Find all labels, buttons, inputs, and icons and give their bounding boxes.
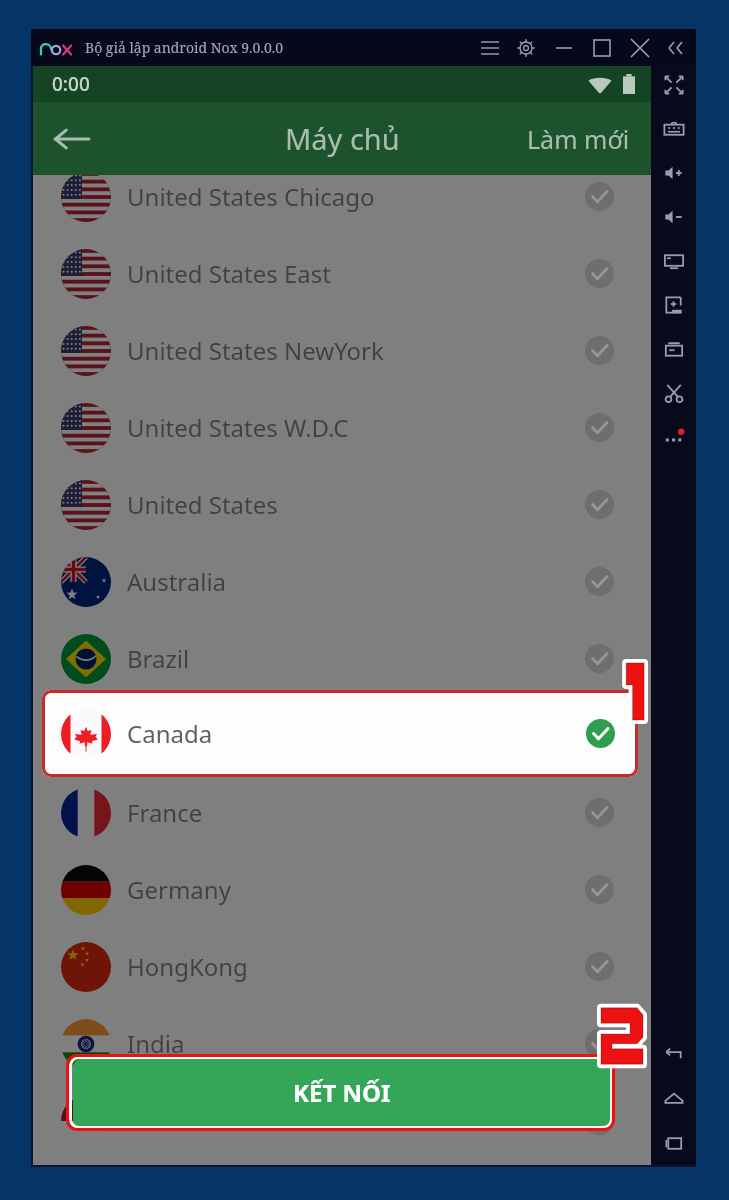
staticText: United States Chicago: [127, 180, 375, 213]
button[interactable]: United States: [33, 466, 651, 543]
button[interactable]: Collapse sidebar: [662, 34, 690, 62]
staticText: United States: [127, 488, 278, 521]
button[interactable]: United States W.D.C: [33, 389, 651, 466]
staticText: HongKong: [127, 950, 248, 983]
button[interactable]: Australia: [33, 543, 651, 620]
staticText: 0:00: [52, 71, 90, 97]
button[interactable]: France: [33, 774, 651, 851]
button[interactable]: Back: [658, 1037, 690, 1069]
button[interactable]: Làm mới: [527, 102, 651, 175]
button[interactable]: Minimize: [550, 34, 578, 62]
button[interactable]: Shared folder: [658, 333, 690, 365]
button[interactable]: Germany: [33, 851, 651, 928]
button[interactable]: United States East: [33, 235, 651, 312]
button[interactable]: Home: [658, 1082, 690, 1114]
button[interactable]: Back: [33, 102, 111, 175]
button[interactable]: Brazil: [33, 620, 651, 697]
staticText: Australia: [127, 565, 227, 598]
button[interactable]: Indonesia: [33, 1082, 651, 1159]
button[interactable]: Volume down: [658, 201, 690, 233]
staticText: United States W.D.C: [127, 411, 349, 444]
staticText: Máy chủ: [285, 119, 400, 158]
button[interactable]: United States NewYork: [33, 312, 651, 389]
staticText: Indonesia: [127, 1104, 239, 1137]
staticText: Bộ giả lập android Nox 9.0.0.0: [85, 38, 284, 57]
staticText: Brazil: [127, 642, 190, 675]
button[interactable]: Menu: [476, 34, 504, 62]
button[interactable]: Canada: [42, 690, 638, 777]
staticText: KẾT NỐI: [293, 1076, 391, 1109]
button[interactable]: Volume up: [658, 157, 690, 189]
staticText: France: [127, 796, 203, 829]
button[interactable]: Screenshot: [658, 245, 690, 277]
button[interactable]: KẾT NỐI: [73, 1059, 610, 1126]
staticText: United States East: [127, 257, 331, 290]
staticText: Germany: [127, 873, 231, 906]
staticText: United States NewYork: [127, 334, 384, 367]
button[interactable]: Settings: [512, 34, 540, 62]
staticText: Làm mới: [527, 122, 630, 156]
staticText: India: [127, 1027, 185, 1060]
button[interactable]: HongKong: [33, 928, 651, 1005]
button[interactable]: Cut: [658, 377, 690, 409]
button[interactable]: Recents: [658, 1127, 690, 1159]
button[interactable]: Install APK: [658, 289, 690, 321]
button[interactable]: Close: [626, 34, 654, 62]
button[interactable]: United States Chicago: [33, 158, 651, 235]
button[interactable]: India: [33, 1005, 651, 1082]
staticText: Canada: [127, 717, 213, 750]
button[interactable]: Maximize: [588, 34, 616, 62]
button[interactable]: Fullscreen: [658, 69, 690, 101]
button[interactable]: Keyboard: [658, 113, 690, 145]
button[interactable]: More: [658, 421, 690, 453]
